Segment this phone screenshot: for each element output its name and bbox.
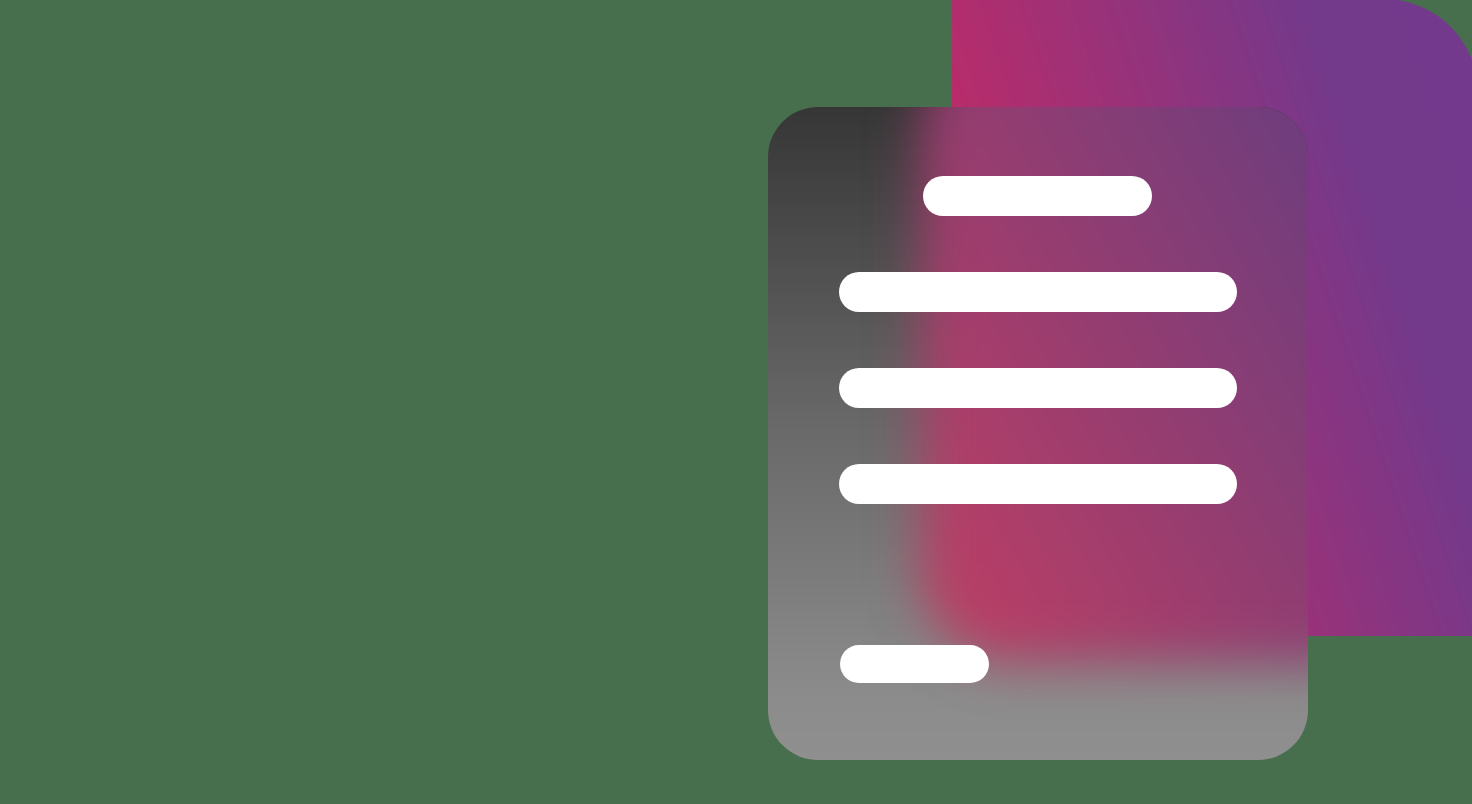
button[interactable]: Open document preview [768, 107, 1308, 760]
